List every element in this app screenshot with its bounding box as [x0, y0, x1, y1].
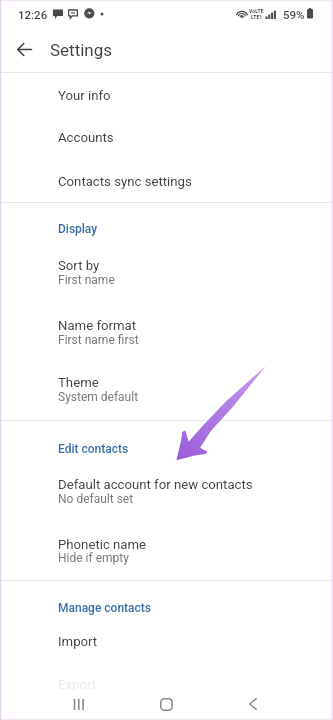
button[interactable] [0, 115, 333, 158]
button[interactable] [0, 624, 333, 666]
staticText: Name format [58, 318, 137, 333]
staticText: System default [58, 390, 139, 404]
button[interactable] [0, 158, 333, 202]
button[interactable] [0, 304, 333, 362]
button[interactable]: Recent apps [57, 682, 101, 720]
button[interactable] [0, 246, 333, 304]
staticText: Edit contacts [58, 442, 129, 456]
staticText: Theme [58, 375, 99, 390]
staticText: Export [58, 677, 97, 692]
staticText: Import [58, 634, 98, 649]
staticText: First name first [58, 333, 139, 347]
staticText: Your info [58, 88, 111, 103]
staticText: Default account for new contacts [58, 477, 253, 492]
button[interactable]: Back [6, 31, 42, 67]
staticText: Sort by [58, 258, 100, 273]
staticText: Contacts sync settings [58, 174, 192, 189]
staticText: No default set [58, 492, 134, 506]
button[interactable] [0, 465, 333, 523]
button[interactable]: Home [144, 682, 188, 720]
button[interactable] [0, 666, 333, 690]
button[interactable] [0, 523, 333, 580]
button[interactable] [0, 362, 333, 420]
staticText: Hide if empty [58, 551, 129, 565]
staticText: Manage contacts [58, 601, 151, 615]
staticText: Display [58, 222, 98, 236]
staticText: LTE1 [251, 14, 263, 20]
staticText: VoLTE [249, 8, 264, 14]
staticText: Accounts [58, 130, 114, 145]
staticText: Settings [50, 40, 113, 60]
staticText: First name [58, 273, 115, 287]
button[interactable] [0, 73, 333, 115]
staticText: Phonetic name [58, 537, 147, 552]
staticText: 12:26 [18, 8, 48, 21]
button[interactable]: Back [231, 682, 275, 720]
staticText: 59% [283, 8, 305, 21]
